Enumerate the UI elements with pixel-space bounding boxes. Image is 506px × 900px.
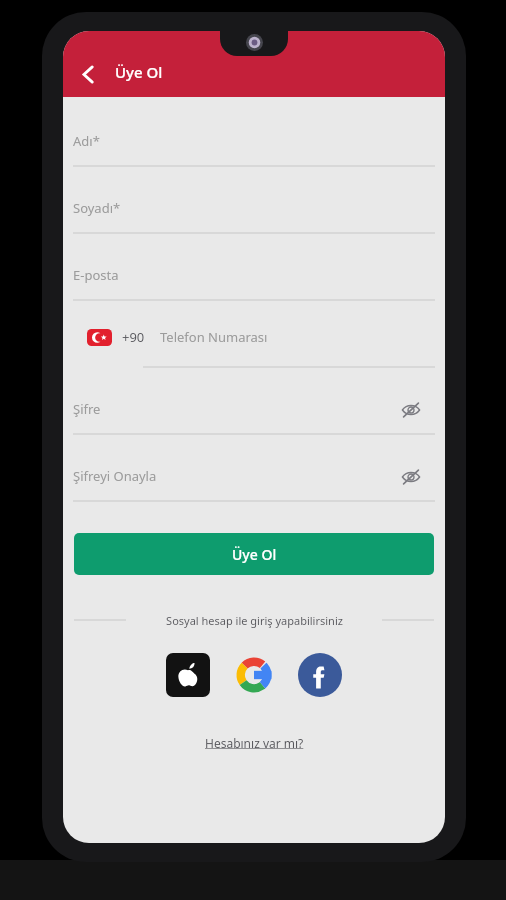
staticText: Sosyal hesap ile giriş yapabilirsiniz [166,613,343,628]
button[interactable]: Sign in with Apple [166,653,210,697]
staticText: Üye Ol [115,62,163,82]
button[interactable]: Üye Ol [74,533,434,575]
button[interactable]: Soyadı* [63,181,445,248]
staticText: +90 [122,328,145,346]
staticText: E-posta [73,266,119,284]
staticText: Soyadı* [73,199,121,217]
button[interactable]: +90 [63,315,445,382]
staticText: Şifre [73,400,101,418]
button[interactable]: Toggle password visibility [394,460,428,494]
staticText: Şifreyi Onayla [73,467,157,485]
button[interactable]: Toggle password visibility [394,393,428,427]
staticText: Üye Ol [232,545,277,564]
button[interactable]: Sign in with Facebook [298,653,342,697]
button[interactable]: Adı* [63,114,445,181]
button[interactable]: Şifre [63,382,445,449]
button[interactable]: Sign in with Google [232,653,276,697]
staticText: Telefon Numarası [160,328,268,346]
button[interactable]: Şifreyi Onayla [63,449,445,516]
staticText: Hesabınız var mı? [205,735,304,751]
button[interactable]: Hesabınız var mı? [195,730,314,756]
button[interactable]: E-posta [63,248,445,315]
staticText: Adı* [73,132,100,150]
button[interactable]: Back [66,52,110,96]
